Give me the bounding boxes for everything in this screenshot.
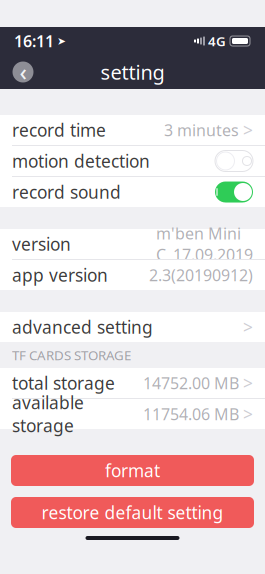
staticText: record time [12,118,106,141]
staticText: total storage [12,371,115,394]
button[interactable]: motion detection [0,146,265,176]
staticText: motion detection [12,149,150,172]
staticText: 4G [208,32,226,50]
button[interactable]: Back [7,56,39,88]
staticText: 14752.00 MB [143,372,239,394]
staticText: ‹ [19,57,26,87]
staticText: record sound [12,180,121,203]
button[interactable]: advanced setting [0,312,265,342]
staticText: 11754.06 MB [143,403,239,425]
staticText: > [243,402,253,425]
button[interactable]: record time [0,115,265,145]
staticText: 2.3(20190912) [149,264,253,286]
staticText: ➤ [57,35,66,47]
staticText: format [105,459,160,482]
staticText: app version [12,263,108,286]
staticText: available storage [12,391,84,437]
staticText: TF CARDS STORAGE [12,346,131,364]
staticText: restore default setting [41,501,223,524]
button[interactable]: record sound [0,177,265,207]
button[interactable]: available storage [0,399,265,429]
staticText: > [243,118,253,141]
staticText: 16:11 [14,30,54,52]
button[interactable]: restore default setting [11,497,254,528]
staticText: version [12,232,71,255]
staticText: 3 minutes [164,119,239,141]
button[interactable]: total storage [0,368,265,398]
staticText: > [243,371,253,394]
staticText: advanced setting [12,315,153,338]
staticText: setting [100,59,164,85]
staticText: m'ben Mini C_17.09.2019 [156,223,253,265]
staticText: > [243,315,253,338]
button[interactable]: format [11,455,254,486]
